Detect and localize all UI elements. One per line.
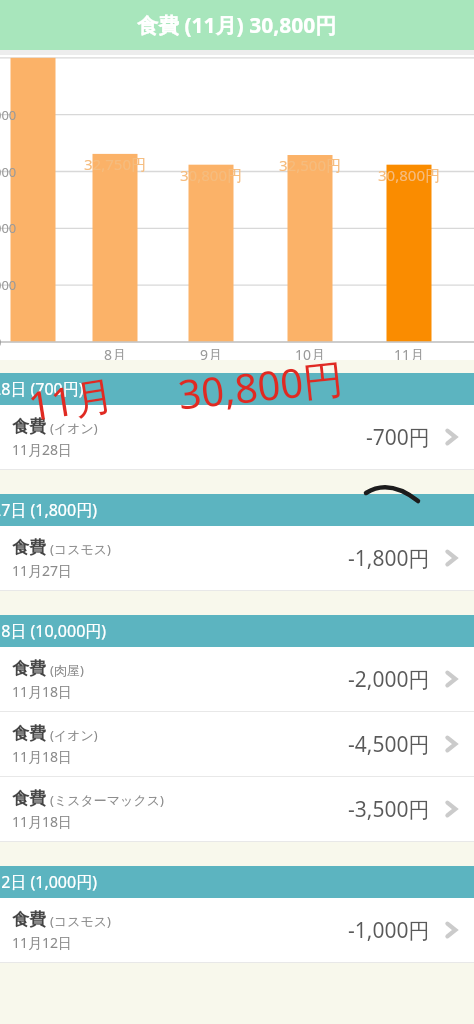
staticText: -1,000円 — [348, 916, 430, 945]
staticText: 0 — [0, 333, 24, 351]
staticText: 食費 — [12, 909, 46, 930]
staticText: 000 — [0, 163, 24, 181]
other: 詳細を開く — [438, 545, 464, 571]
staticText: 11月18日 — [12, 812, 73, 831]
other: 詳細を開く — [438, 666, 464, 692]
button[interactable]: 食費 — [0, 777, 474, 841]
staticText: 12日 (1,000円) — [0, 871, 97, 893]
staticText: 食費 — [12, 788, 46, 809]
staticText: 食費 (11月) 30,800円 — [137, 11, 337, 40]
staticText: 32,500円 — [260, 155, 360, 175]
button[interactable]: 食費 — [0, 647, 474, 711]
staticText: -700円 — [366, 423, 430, 452]
staticText: 11月18日 — [12, 682, 73, 701]
staticText: (コスモス) — [50, 912, 112, 930]
staticText: 000 — [0, 276, 24, 294]
staticText: 食費 — [12, 658, 46, 679]
staticText: 食費 — [12, 723, 46, 744]
staticText: 食費 — [12, 416, 46, 437]
staticText: 11月 — [24, 366, 118, 433]
staticText: 11月 — [369, 345, 449, 360]
button[interactable]: 食費 — [0, 712, 474, 776]
button[interactable]: 12日 (1,000円) — [0, 866, 474, 898]
staticText: 11月12日 — [12, 933, 73, 952]
staticText: (イオン) — [50, 419, 98, 437]
other: 詳細を開く — [438, 796, 464, 822]
button[interactable]: 27日 (1,800円) — [0, 494, 474, 526]
other: 詳細を開く — [438, 917, 464, 943]
staticText: 8月 — [75, 345, 155, 360]
staticText: 28日 (700円) — [0, 378, 84, 400]
staticText: (コスモス) — [50, 540, 112, 558]
staticText: 000 — [0, 106, 24, 124]
button[interactable]: 食費 — [0, 898, 474, 962]
staticText: -3,500円 — [348, 795, 430, 824]
staticText: 000 — [0, 219, 24, 237]
staticText: 11月27日 — [12, 561, 73, 580]
other: 詳細を開く — [438, 731, 464, 757]
staticText: 30,800円 — [161, 165, 261, 185]
staticText: 18日 (10,000円) — [0, 620, 107, 642]
staticText: -1,800円 — [348, 544, 430, 573]
staticText: -2,000円 — [348, 665, 430, 694]
button[interactable]: 食費 — [0, 405, 474, 469]
staticText: 30,800円 — [359, 165, 459, 185]
staticText: 32,750円 — [65, 154, 165, 174]
button[interactable]: 18日 (10,000円) — [0, 615, 474, 647]
staticText: 27日 (1,800円) — [0, 499, 97, 521]
button[interactable]: 食費 — [0, 526, 474, 590]
staticText: 11月28日 — [12, 440, 73, 459]
button[interactable]: 食費 (11月) 30,800円 — [0, 0, 474, 50]
staticText: (イオン) — [50, 726, 98, 744]
staticText: 9月 — [171, 345, 251, 360]
button[interactable]: 28日 (700円) — [0, 373, 474, 405]
staticText: 食費 — [12, 537, 46, 558]
staticText: (ミスターマックス) — [50, 791, 164, 809]
staticText: -4,500円 — [348, 730, 430, 759]
staticText: 30,800円 — [176, 349, 346, 422]
staticText: 11月18日 — [12, 747, 73, 766]
staticText: (肉屋) — [50, 661, 84, 679]
staticText: 10月 — [270, 345, 350, 360]
other: 詳細を開く — [438, 424, 464, 450]
